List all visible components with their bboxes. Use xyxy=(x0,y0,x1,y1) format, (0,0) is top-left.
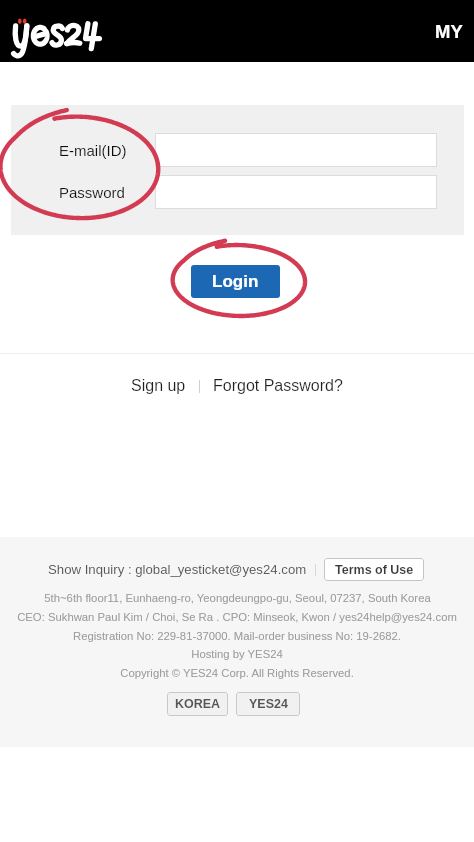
staticText: Copyright © YES24 Corp. All Rights Reser… xyxy=(120,667,354,680)
button[interactable]: Sign up xyxy=(118,367,199,405)
staticText: Login xyxy=(212,272,259,291)
staticText: Terms of Use xyxy=(335,563,414,577)
button[interactable]: YES24 home xyxy=(11,14,103,54)
staticText: Registration No: 229-81-37000. Mail-orde… xyxy=(73,630,401,643)
button[interactable] xyxy=(155,133,437,167)
button[interactable]: YES24 xyxy=(236,692,300,716)
staticText: Sign up xyxy=(131,377,186,395)
staticText: Hosting by YES24 xyxy=(191,648,283,661)
staticText: YES24 xyxy=(249,697,288,711)
staticText: CEO: Sukhwan Paul Kim / Choi, Se Ra . CP… xyxy=(17,611,457,624)
staticText: E-mail(ID) xyxy=(59,142,127,159)
button[interactable]: MY xyxy=(417,9,474,54)
staticText: 5th~6th floor11, Eunhaeng-ro, Yeongdeung… xyxy=(44,592,431,605)
button[interactable]: Forgot Password? xyxy=(200,367,356,405)
button[interactable]: Terms of Use xyxy=(324,558,424,581)
staticText: Forgot Password? xyxy=(213,377,343,395)
staticText: Password xyxy=(59,184,125,201)
button[interactable] xyxy=(155,175,437,209)
staticText: Show Inquiry : global_yesticket@yes24.co… xyxy=(48,562,307,577)
staticText: MY xyxy=(435,21,463,42)
button[interactable]: KOREA xyxy=(167,692,228,716)
button[interactable]: Login xyxy=(191,265,280,298)
staticText: KOREA xyxy=(175,697,221,711)
